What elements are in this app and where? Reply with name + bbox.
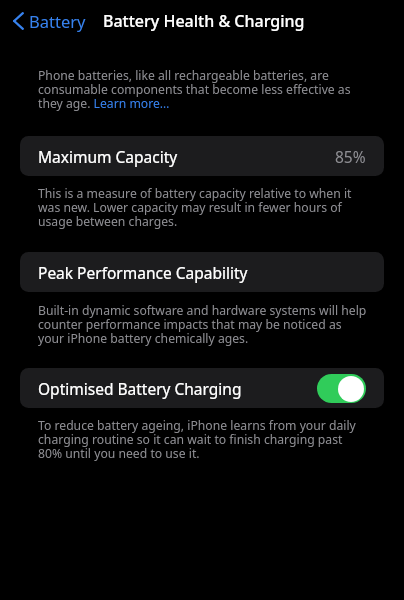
staticText: This is a measure of battery capacity re… [38,185,368,230]
button[interactable]: Phone batteries, like all rechargeable b… [38,67,368,112]
staticText: Maximum Capacity [38,146,178,167]
button[interactable]: Peak Performance Capability [20,252,384,292]
button[interactable]: Optimised Battery Charging, on [317,374,366,403]
staticText: Battery [29,10,86,32]
staticText: To reduce battery ageing, iPhone learns … [38,417,368,462]
button[interactable]: Back to Battery [9,5,90,37]
staticText: Optimised Battery Charging [38,378,242,399]
staticText: Built-in dynamic software and hardware s… [38,302,368,347]
staticText: 85% [335,146,366,167]
button[interactable]: Optimised Battery Charging [20,368,384,408]
staticText: Peak Performance Capability [38,262,248,283]
staticText: Battery Health & Charging [103,10,305,32]
button[interactable]: Maximum Capacity [20,136,384,176]
